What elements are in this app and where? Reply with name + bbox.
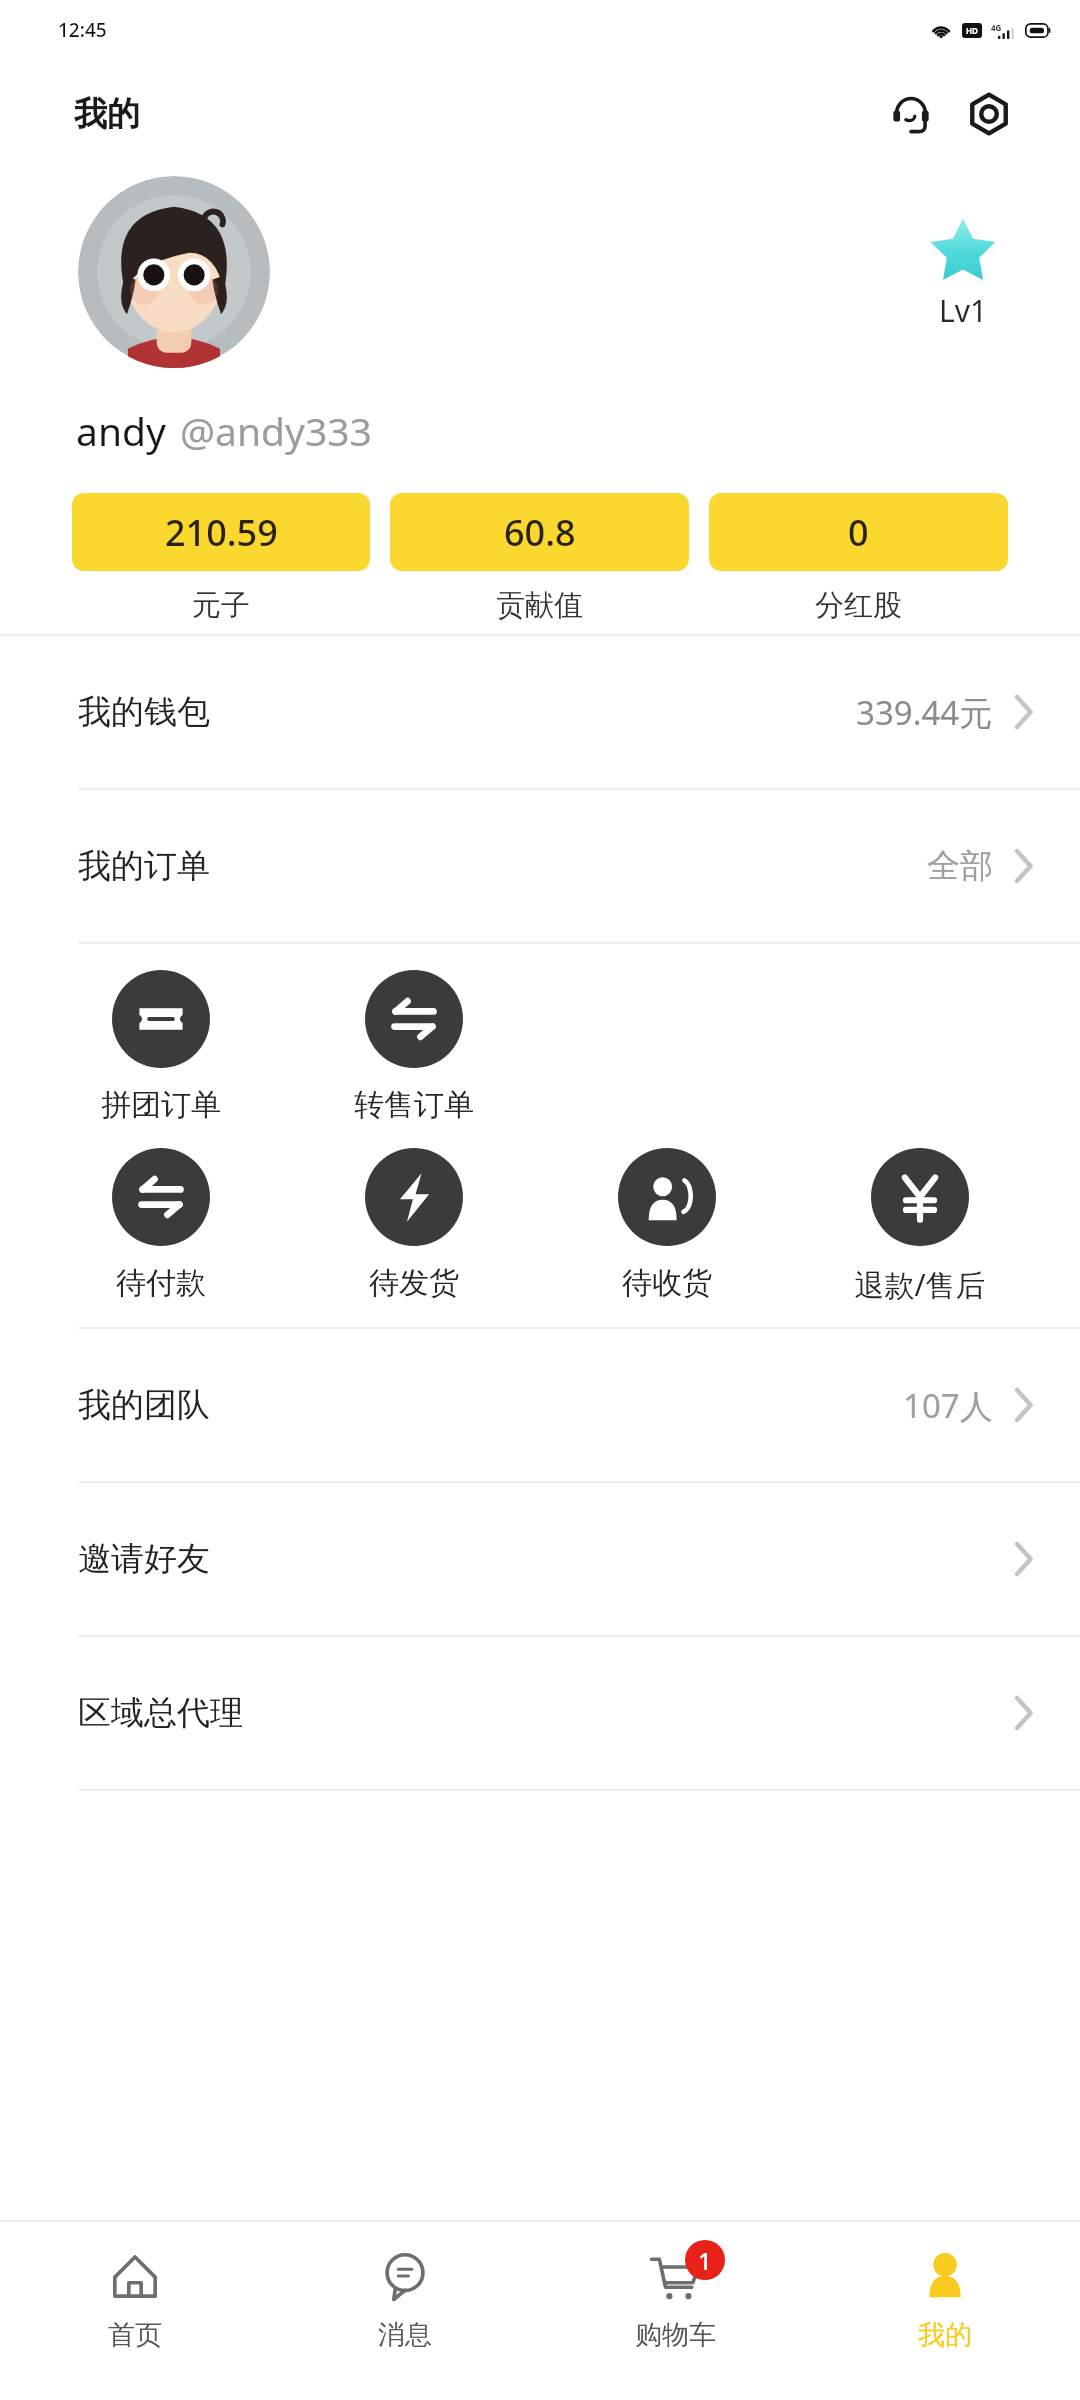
staticText: andy	[76, 404, 166, 457]
staticText: 我的订单	[78, 845, 210, 887]
staticText: Lv1	[939, 290, 988, 331]
button[interactable]: 0	[709, 493, 1008, 624]
staticText: 4G	[991, 22, 1002, 33]
staticText: 1	[698, 2244, 712, 2277]
staticText: 12:45	[58, 17, 107, 43]
staticText: HD	[966, 25, 978, 36]
button[interactable]: 首页	[0, 2222, 270, 2400]
staticText: 210.59	[165, 508, 278, 557]
staticText: 我的团队	[78, 1384, 210, 1426]
button[interactable]: 我的团队	[0, 1329, 1080, 1481]
staticText: 全部	[927, 845, 993, 887]
staticText: 分红股	[815, 587, 902, 624]
button[interactable]: 转售订单	[287, 970, 540, 1124]
button[interactable]: 我的订单	[0, 790, 1080, 942]
button[interactable]: Lv1	[926, 214, 1000, 331]
button[interactable]: 拼团订单	[34, 970, 287, 1124]
button[interactable]	[78, 176, 270, 368]
button[interactable]: 我的钱包	[0, 636, 1080, 788]
button[interactable]: 邀请好友	[0, 1483, 1080, 1635]
staticText: 邀请好友	[78, 1538, 210, 1580]
staticText: 拼团订单	[101, 1086, 221, 1124]
staticText: 我的	[74, 93, 140, 135]
staticText: 待付款	[116, 1264, 206, 1302]
staticText: 转售订单	[354, 1086, 474, 1124]
staticText: 我的	[918, 2318, 972, 2352]
button[interactable]: 1	[540, 2222, 810, 2400]
button[interactable]: 60.8	[390, 493, 689, 624]
button[interactable]: 我的	[810, 2222, 1080, 2400]
staticText: 元子	[192, 587, 250, 624]
staticText: 待发货	[369, 1264, 459, 1302]
button[interactable]: 210.59	[72, 493, 370, 624]
staticText: 我的钱包	[78, 691, 210, 733]
staticText: 退款/售后	[854, 1264, 986, 1305]
button[interactable]: 待收货	[540, 1148, 793, 1302]
button[interactable]: 退款/售后	[793, 1148, 1046, 1305]
staticText: 待收货	[622, 1264, 712, 1302]
button[interactable]: Settings	[960, 85, 1018, 143]
button[interactable]: Customer service	[882, 85, 940, 143]
button[interactable]: 待付款	[34, 1148, 287, 1302]
staticText: 消息	[378, 2318, 432, 2352]
staticText: 区域总代理	[78, 1692, 243, 1734]
staticText: 107人	[903, 1383, 993, 1428]
staticText: @andy333	[180, 404, 372, 457]
staticText: 首页	[108, 2318, 162, 2352]
staticText: 购物车	[635, 2318, 716, 2352]
button[interactable]: 区域总代理	[0, 1637, 1080, 1789]
staticText: 0	[848, 508, 869, 557]
staticText: 贡献值	[496, 587, 583, 624]
button[interactable]: 待发货	[287, 1148, 540, 1302]
staticText: 60.8	[504, 508, 576, 557]
button[interactable]: 消息	[270, 2222, 540, 2400]
staticText: 339.44元	[856, 690, 993, 735]
